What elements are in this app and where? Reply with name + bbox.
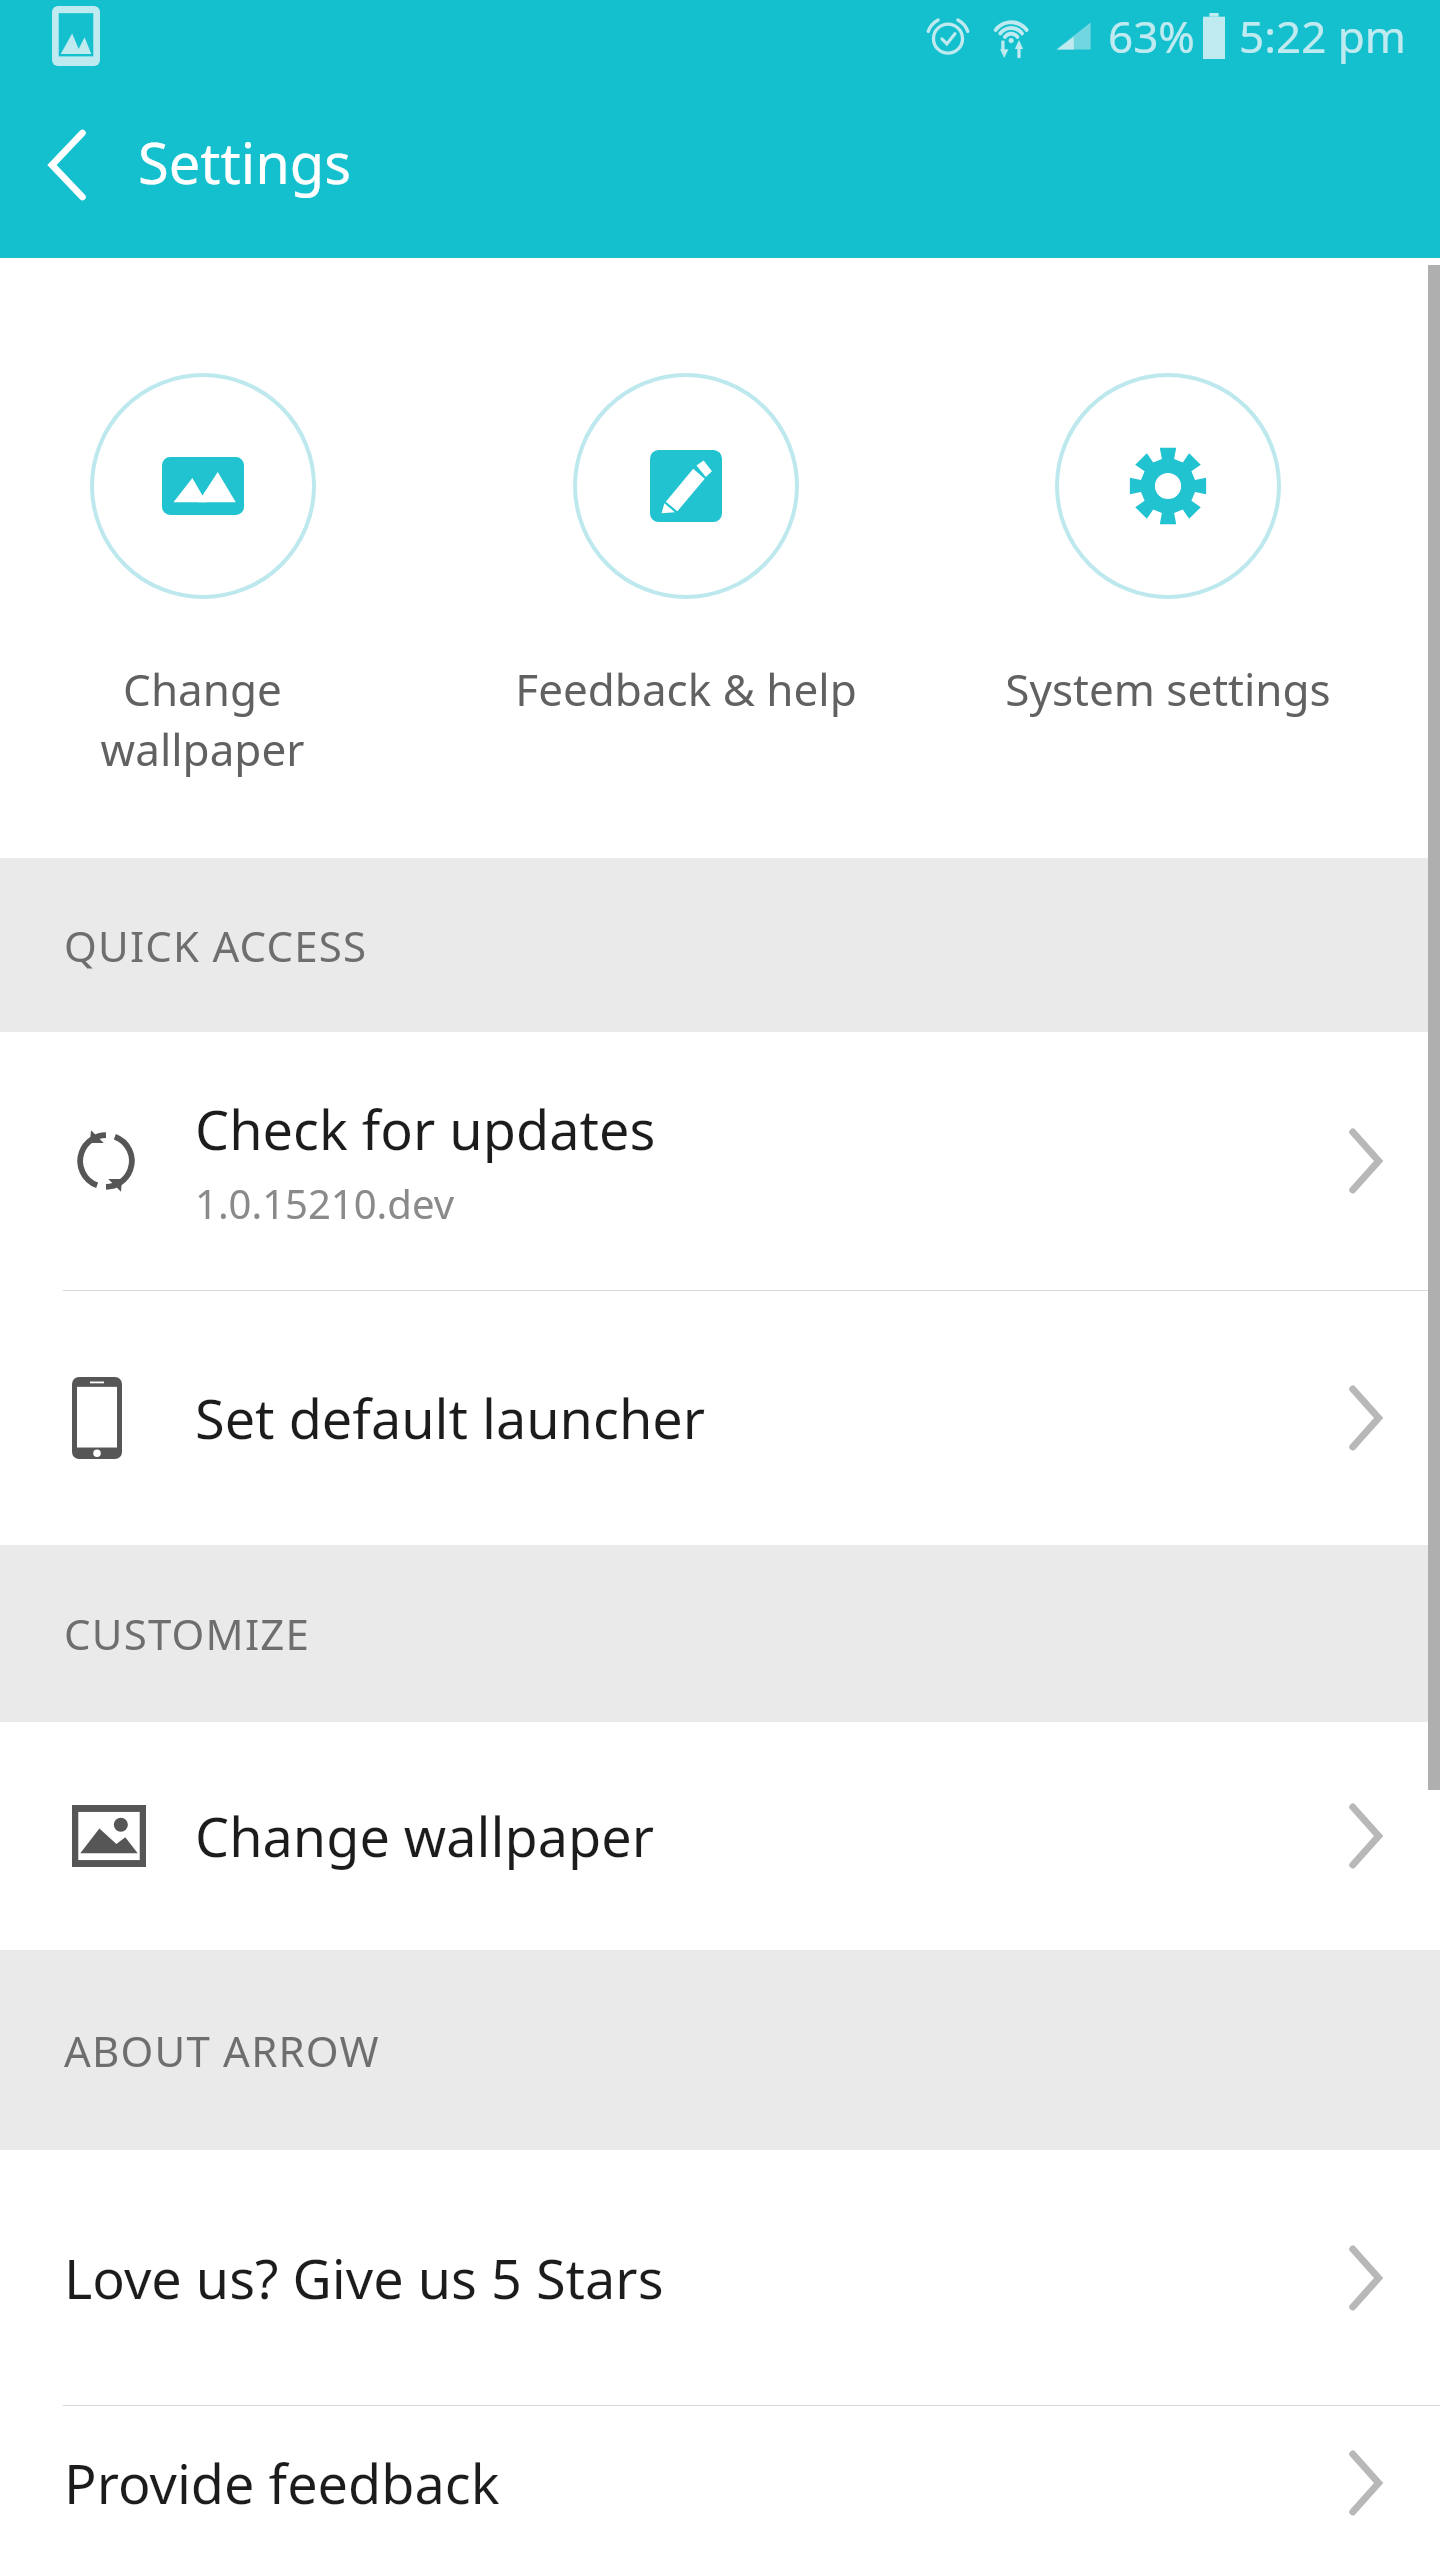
button[interactable]: Provide feedback bbox=[0, 2406, 1440, 2560]
staticText: Feedback & help bbox=[515, 659, 857, 719]
button[interactable]: System settings bbox=[995, 373, 1340, 719]
staticText: 1.0.15210.dev bbox=[195, 1176, 454, 1230]
staticText: Settings bbox=[138, 124, 352, 200]
staticText: Love us? Give us 5 Stars bbox=[64, 2241, 664, 2315]
staticText: Provide feedback bbox=[64, 2446, 500, 2520]
staticText: Set default launcher bbox=[195, 1381, 706, 1455]
staticText: 5:22 pm bbox=[1239, 6, 1406, 66]
button[interactable]: Change wallpaper bbox=[0, 1722, 1440, 1950]
button[interactable]: Back bbox=[18, 115, 118, 215]
button[interactable]: Love us? Give us 5 Stars bbox=[0, 2150, 1440, 2405]
staticText: Change wallpaper bbox=[30, 659, 375, 779]
button[interactable]: Change wallpaper bbox=[30, 373, 375, 779]
staticText: QUICK ACCESS bbox=[64, 917, 368, 974]
staticText: CUSTOMIZE bbox=[64, 1605, 311, 1662]
staticText: System settings bbox=[1005, 659, 1331, 719]
button[interactable]: Set default launcher bbox=[0, 1291, 1440, 1545]
button[interactable]: Feedback & help bbox=[513, 373, 858, 719]
staticText: Check for updates bbox=[195, 1092, 656, 1166]
button[interactable]: Check for updates bbox=[0, 1032, 1440, 1290]
staticText: 63% bbox=[1108, 6, 1195, 66]
staticText: Change wallpaper bbox=[195, 1799, 654, 1873]
staticText: ABOUT ARROW bbox=[64, 2022, 380, 2079]
